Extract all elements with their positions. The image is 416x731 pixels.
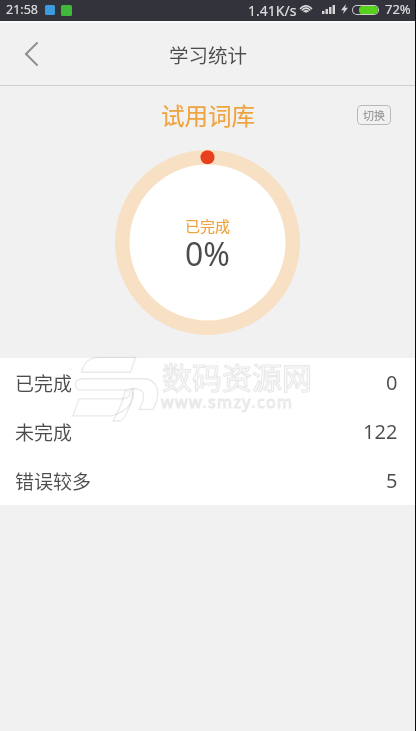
button[interactable]: 错误较多 — [0, 456, 416, 505]
staticText: 0% — [185, 232, 230, 276]
staticText: 72% — [385, 0, 411, 18]
staticText: 0 — [386, 369, 398, 396]
staticText: 错误较多 — [15, 467, 92, 495]
staticText: 未完成 — [15, 418, 73, 446]
staticText: 已完成 — [185, 215, 231, 237]
staticText: 21:58 — [6, 1, 38, 18]
staticText: 切换 — [363, 107, 385, 123]
staticText: 数码资源网 — [162, 354, 312, 397]
button[interactable]: 未完成 — [0, 407, 416, 456]
staticText: 试用词库 — [0, 98, 416, 132]
button[interactable]: 切换 — [357, 105, 391, 125]
button[interactable]: 已完成 — [0, 358, 416, 407]
staticText: 122 — [363, 418, 398, 445]
staticText: 学习统计 — [169, 40, 248, 68]
staticText: www.smzy.com — [161, 391, 294, 413]
staticText: 1.41K/s — [248, 1, 297, 20]
staticText: 5 — [386, 467, 398, 494]
button[interactable]: Back — [0, 23, 56, 85]
staticText: 已完成 — [15, 369, 73, 397]
